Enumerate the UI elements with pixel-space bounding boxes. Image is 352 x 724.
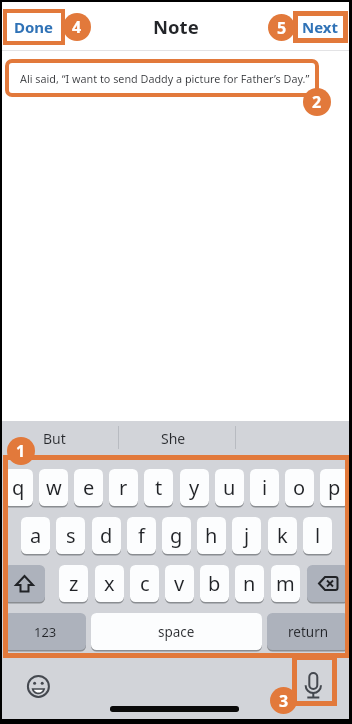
button[interactable]: space bbox=[91, 613, 262, 652]
staticText: x bbox=[104, 570, 115, 597]
staticText: 5 bbox=[277, 17, 287, 39]
button[interactable]: p bbox=[320, 469, 349, 508]
button[interactable]: j bbox=[232, 517, 261, 556]
staticText: k bbox=[277, 522, 288, 549]
staticText: Done bbox=[14, 17, 54, 37]
staticText: o bbox=[293, 474, 306, 501]
button[interactable] bbox=[20, 668, 57, 705]
button[interactable]: s bbox=[56, 517, 85, 556]
staticText: v bbox=[174, 570, 185, 597]
button[interactable]: o bbox=[285, 469, 314, 508]
button[interactable]: f bbox=[127, 517, 156, 556]
button[interactable]: n bbox=[235, 565, 264, 604]
button[interactable]: v bbox=[165, 565, 194, 604]
staticText: t bbox=[155, 474, 163, 501]
staticText: a bbox=[30, 522, 42, 549]
button[interactable]: c bbox=[130, 565, 159, 604]
staticText: n bbox=[243, 570, 256, 597]
staticText: But bbox=[43, 429, 66, 448]
staticText: g bbox=[170, 522, 183, 549]
staticText: j bbox=[244, 522, 250, 549]
staticText: 123 bbox=[34, 623, 57, 641]
staticText: h bbox=[205, 522, 218, 549]
button[interactable]: But bbox=[0, 421, 109, 455]
button[interactable] bbox=[296, 664, 332, 704]
staticText: m bbox=[276, 570, 295, 597]
button[interactable]: r bbox=[109, 469, 138, 508]
staticText: Note bbox=[153, 14, 199, 39]
staticText: p bbox=[328, 474, 341, 501]
button[interactable]: She bbox=[114, 421, 232, 455]
button[interactable]: h bbox=[197, 517, 226, 556]
staticText: b bbox=[208, 570, 221, 597]
button[interactable]: m bbox=[271, 565, 300, 604]
button[interactable]: i bbox=[250, 469, 279, 508]
button[interactable]: 123 bbox=[4, 613, 86, 652]
staticText: c bbox=[140, 570, 150, 597]
button[interactable]: d bbox=[92, 517, 121, 556]
button[interactable] bbox=[307, 565, 349, 604]
staticText: z bbox=[69, 570, 79, 597]
staticText: Next bbox=[302, 17, 339, 37]
staticText: 2 bbox=[312, 91, 322, 113]
button[interactable]: Ali said, “I want to send Daddy a pictur… bbox=[5, 59, 319, 97]
staticText: u bbox=[223, 474, 236, 501]
button[interactable]: u bbox=[215, 469, 244, 508]
button[interactable]: t bbox=[144, 469, 173, 508]
button[interactable]: w bbox=[39, 469, 68, 508]
staticText: space bbox=[158, 623, 195, 641]
button[interactable]: a bbox=[21, 517, 50, 556]
button[interactable]: Next bbox=[293, 11, 348, 43]
button[interactable]: b bbox=[200, 565, 229, 604]
button[interactable]: x bbox=[95, 565, 124, 604]
staticText: e bbox=[83, 474, 95, 501]
staticText: 1 bbox=[16, 440, 26, 462]
staticText: d bbox=[100, 522, 113, 549]
button[interactable]: e bbox=[74, 469, 103, 508]
staticText: q bbox=[12, 474, 25, 501]
staticText: 3 bbox=[279, 690, 289, 712]
staticText: 4 bbox=[72, 16, 82, 38]
button[interactable]: k bbox=[268, 517, 297, 556]
staticText: f bbox=[138, 522, 145, 549]
staticText: r bbox=[119, 474, 128, 501]
button[interactable]: Done bbox=[3, 9, 65, 45]
button[interactable]: y bbox=[180, 469, 209, 508]
staticText: y bbox=[189, 474, 200, 501]
staticText: return bbox=[288, 623, 329, 641]
staticText: She bbox=[161, 429, 186, 448]
button[interactable]: g bbox=[162, 517, 191, 556]
button[interactable]: return bbox=[267, 613, 349, 652]
staticText: s bbox=[66, 522, 76, 549]
button[interactable]: z bbox=[59, 565, 88, 604]
staticText: i bbox=[262, 474, 268, 501]
button[interactable] bbox=[4, 565, 45, 604]
button[interactable]: q bbox=[4, 469, 33, 508]
staticText: w bbox=[46, 474, 62, 501]
staticText: Ali said, “I want to send Daddy a pictur… bbox=[20, 71, 310, 86]
button[interactable]: l bbox=[303, 517, 332, 556]
staticText: l bbox=[315, 522, 321, 549]
